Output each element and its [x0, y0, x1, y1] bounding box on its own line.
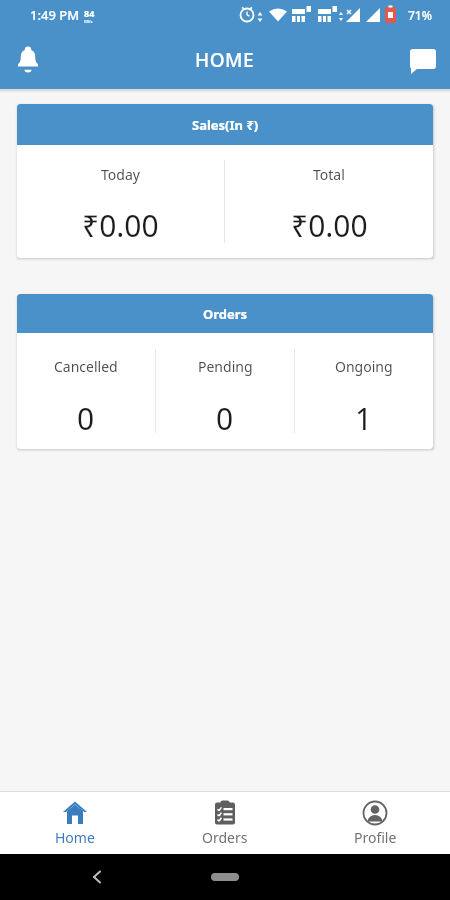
staticText: KB/s	[84, 19, 93, 24]
staticText: Today	[101, 165, 140, 184]
button[interactable]: Total	[225, 145, 433, 258]
button[interactable]: Pending	[156, 333, 294, 449]
staticText: 1	[355, 398, 373, 439]
staticText: 1:49 PM	[30, 6, 80, 24]
staticText: 71%	[408, 7, 432, 23]
button[interactable]: Orders	[150, 792, 300, 854]
staticText: Home	[55, 828, 95, 847]
staticText: Pending	[198, 357, 253, 376]
button[interactable]	[211, 873, 239, 881]
staticText: Cancelled	[54, 357, 118, 376]
staticText: Total	[313, 165, 345, 184]
staticText: 0	[216, 398, 234, 439]
button[interactable]: Ongoing	[295, 333, 433, 449]
button[interactable]: Cancelled	[17, 333, 155, 449]
button[interactable]	[406, 43, 440, 77]
staticText: Profile	[354, 828, 397, 847]
button[interactable]: Home	[0, 792, 150, 854]
staticText: Ongoing	[335, 357, 393, 376]
staticText: Orders	[202, 828, 248, 847]
button[interactable]: Profile	[300, 792, 450, 854]
staticText: HOME	[195, 47, 255, 73]
staticText: 84	[84, 7, 95, 19]
staticText: Sales(In ₹)	[192, 116, 259, 134]
staticText: 0	[77, 398, 95, 439]
staticText: Orders	[203, 305, 248, 323]
staticText: ₹0.00	[291, 205, 368, 246]
button[interactable]: Today	[17, 145, 224, 258]
button[interactable]	[12, 44, 44, 76]
staticText: ₹0.00	[82, 205, 159, 246]
